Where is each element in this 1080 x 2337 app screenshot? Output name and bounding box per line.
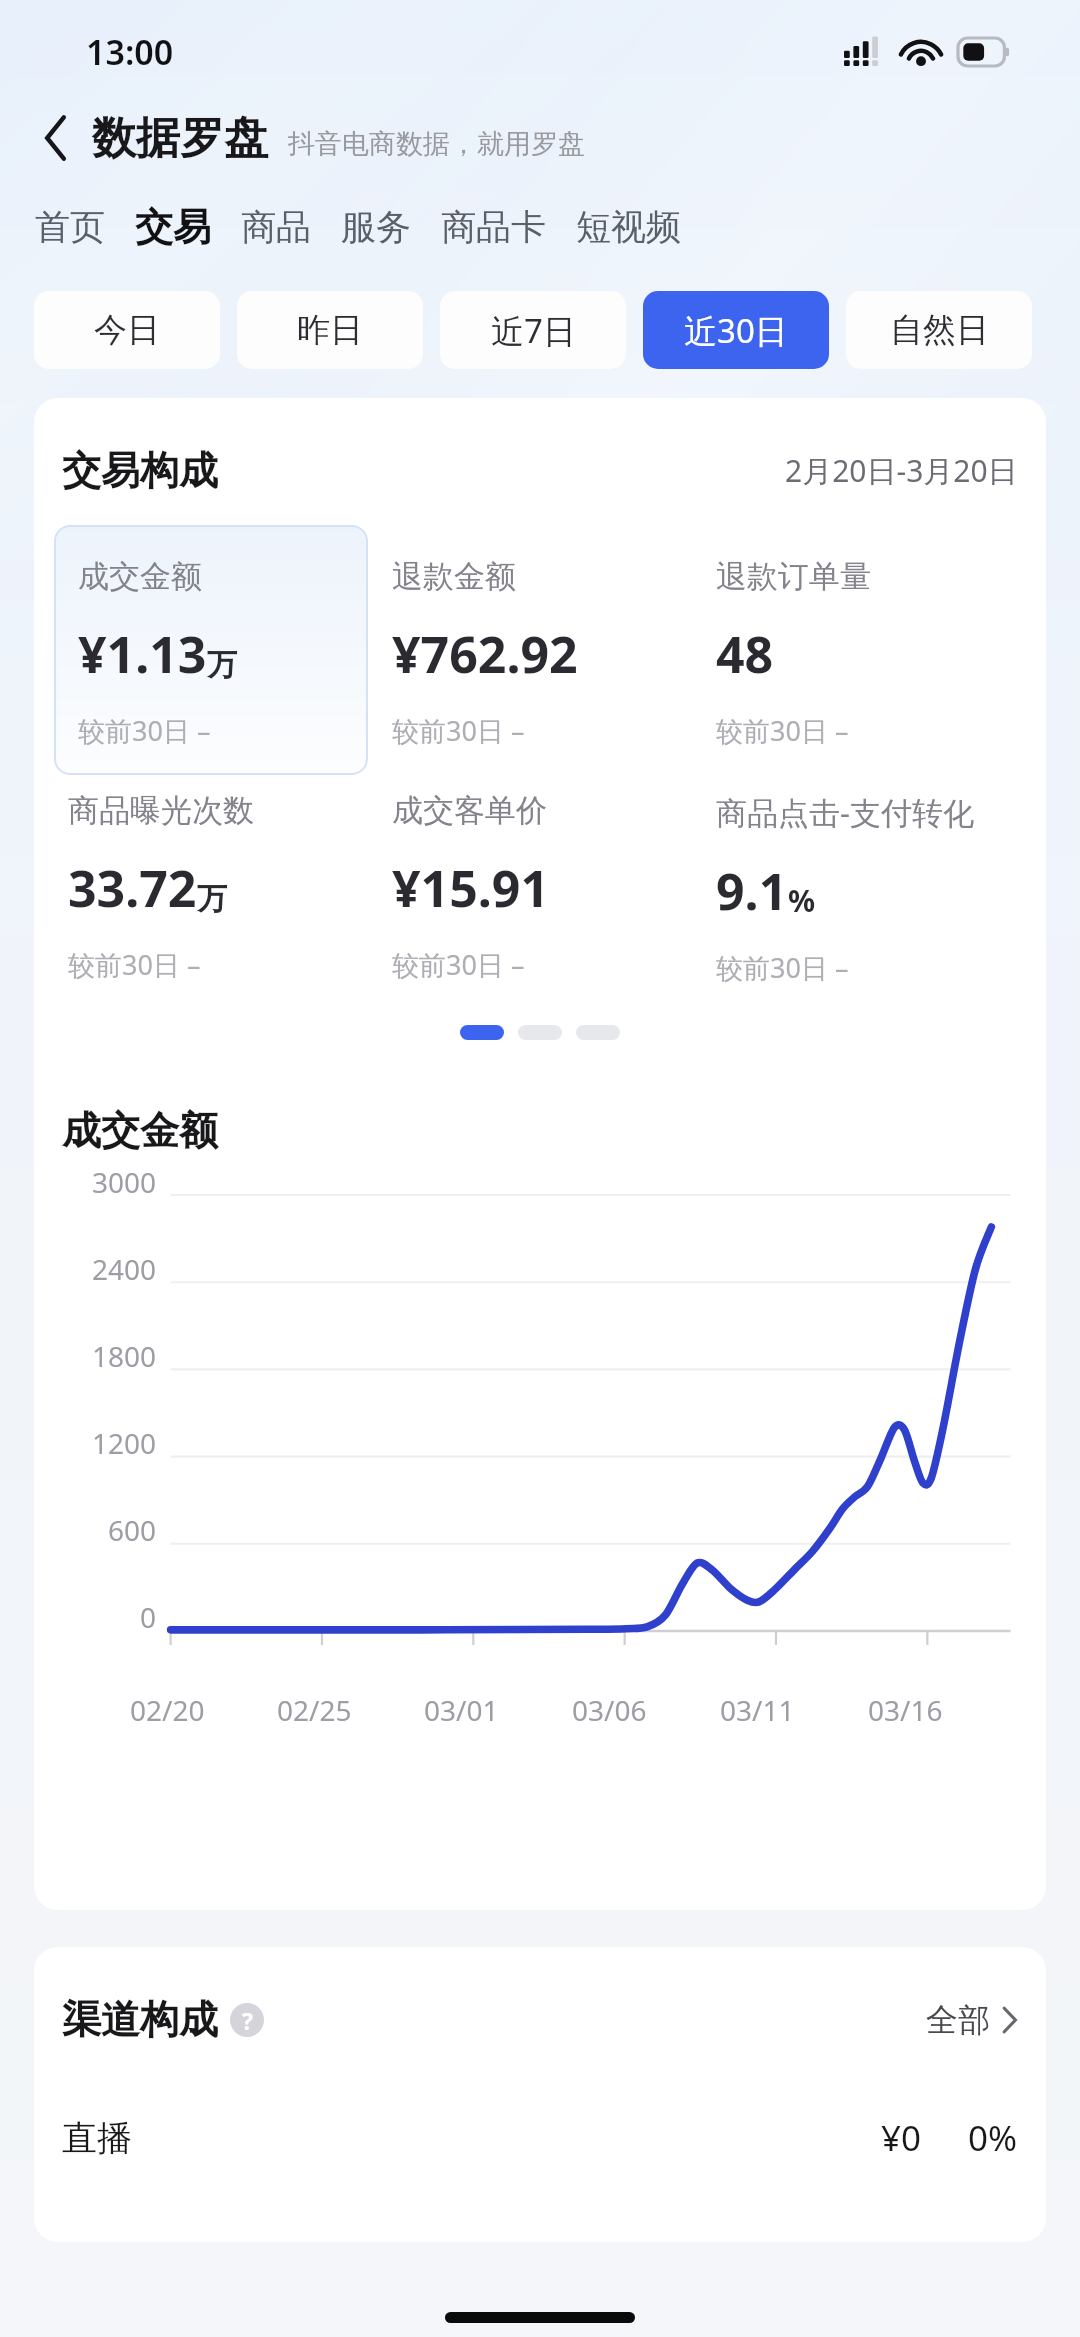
staticText: 2月20日-3月20日 bbox=[785, 450, 1018, 491]
staticText: ¥1.13 bbox=[78, 620, 207, 688]
staticText: 较前30日 – bbox=[78, 712, 211, 749]
staticText: 商品点击-支付转化 bbox=[716, 791, 974, 833]
button[interactable]: 成交客单价 bbox=[378, 775, 702, 1001]
staticText: 直播 bbox=[62, 2116, 132, 2160]
staticText: 万 bbox=[207, 646, 237, 684]
staticText: 较前30日 – bbox=[716, 712, 849, 749]
staticText: 商品曝光次数 bbox=[68, 791, 254, 830]
button[interactable]: Help bbox=[230, 2003, 264, 2037]
button[interactable] bbox=[518, 1025, 562, 1040]
button[interactable]: 昨日 bbox=[237, 291, 423, 369]
button[interactable]: Back bbox=[26, 108, 86, 168]
staticText: 交易构成 bbox=[62, 446, 218, 495]
button[interactable]: 近7日 bbox=[440, 291, 626, 369]
staticText: 昨日 bbox=[297, 309, 363, 351]
staticText: 1200 bbox=[91, 1424, 156, 1462]
staticText: 较前30日 – bbox=[68, 946, 201, 983]
staticText: 近30日 bbox=[684, 308, 788, 353]
staticText: 较前30日 – bbox=[716, 949, 849, 986]
staticText: ¥0 bbox=[881, 2114, 922, 2162]
staticText: 较前30日 – bbox=[392, 946, 525, 983]
staticText: 近7日 bbox=[491, 308, 576, 353]
staticText: 48 bbox=[716, 620, 774, 688]
button[interactable] bbox=[460, 1025, 504, 1040]
staticText: 600 bbox=[107, 1511, 156, 1549]
button[interactable]: 首页 bbox=[35, 205, 105, 249]
button[interactable]: 全部 bbox=[926, 2000, 1018, 2040]
staticText: 全部 bbox=[926, 2000, 990, 2040]
button[interactable]: 商品曝光次数 bbox=[54, 775, 378, 1001]
staticText: 0 bbox=[139, 1598, 156, 1636]
button[interactable]: 商品 bbox=[241, 205, 311, 249]
staticText: 03/11 bbox=[720, 1691, 795, 1729]
staticText: ¥762.92 bbox=[392, 620, 578, 688]
staticText: 数据罗盘 bbox=[92, 111, 268, 166]
staticText: 短视频 bbox=[576, 205, 681, 249]
staticText: 03/16 bbox=[868, 1691, 943, 1729]
staticText: 商品卡 bbox=[441, 205, 546, 249]
button[interactable]: 商品点击-支付转化 bbox=[702, 775, 1026, 1001]
button[interactable]: 近30日 bbox=[643, 291, 829, 369]
staticText: 今日 bbox=[94, 309, 160, 351]
staticText: 退款金额 bbox=[392, 557, 516, 596]
staticText: 渠道构成 bbox=[62, 1995, 218, 2044]
staticText: ? bbox=[242, 2005, 253, 2036]
staticText: 交易 bbox=[135, 203, 211, 251]
staticText: 商品 bbox=[241, 205, 311, 249]
staticText: 2400 bbox=[91, 1250, 156, 1288]
button[interactable]: 商品卡 bbox=[441, 205, 546, 249]
button[interactable]: 成交金额 bbox=[54, 525, 368, 775]
staticText: 服务 bbox=[341, 205, 411, 249]
button[interactable]: 退款订单量 bbox=[702, 525, 1026, 775]
staticText: 万 bbox=[197, 880, 227, 918]
button[interactable]: 今日 bbox=[34, 291, 220, 369]
button[interactable]: 直播 bbox=[62, 2114, 1018, 2162]
button[interactable]: 退款金额 bbox=[378, 525, 702, 775]
staticText: 成交金额 bbox=[78, 557, 202, 596]
button[interactable]: 短视频 bbox=[576, 205, 681, 249]
staticText: 退款订单量 bbox=[716, 557, 871, 596]
staticText: 抖音电商数据，就用罗盘 bbox=[288, 127, 585, 161]
staticText: 02/25 bbox=[277, 1691, 352, 1729]
staticText: 13:00 bbox=[86, 29, 174, 75]
staticText: 成交金额 bbox=[62, 1106, 218, 1155]
button[interactable]: 自然日 bbox=[846, 291, 1032, 369]
staticText: 首页 bbox=[35, 205, 105, 249]
staticText: 成交客单价 bbox=[392, 791, 547, 830]
staticText: 3000 bbox=[91, 1163, 156, 1201]
button[interactable]: 交易 bbox=[135, 203, 211, 251]
staticText: 1800 bbox=[91, 1337, 156, 1375]
button[interactable] bbox=[576, 1025, 620, 1040]
staticText: 02/20 bbox=[130, 1691, 205, 1729]
staticText: 03/06 bbox=[572, 1691, 647, 1729]
staticText: 0% bbox=[968, 2114, 1018, 2162]
staticText: 03/01 bbox=[424, 1691, 499, 1729]
staticText: 9.1 bbox=[716, 857, 788, 925]
staticText: 自然日 bbox=[890, 309, 989, 351]
button[interactable]: 服务 bbox=[341, 205, 411, 249]
staticText: 33.72 bbox=[68, 854, 197, 922]
staticText: 较前30日 – bbox=[392, 712, 525, 749]
staticText: ¥15.91 bbox=[392, 854, 550, 922]
staticText: % bbox=[788, 880, 816, 921]
